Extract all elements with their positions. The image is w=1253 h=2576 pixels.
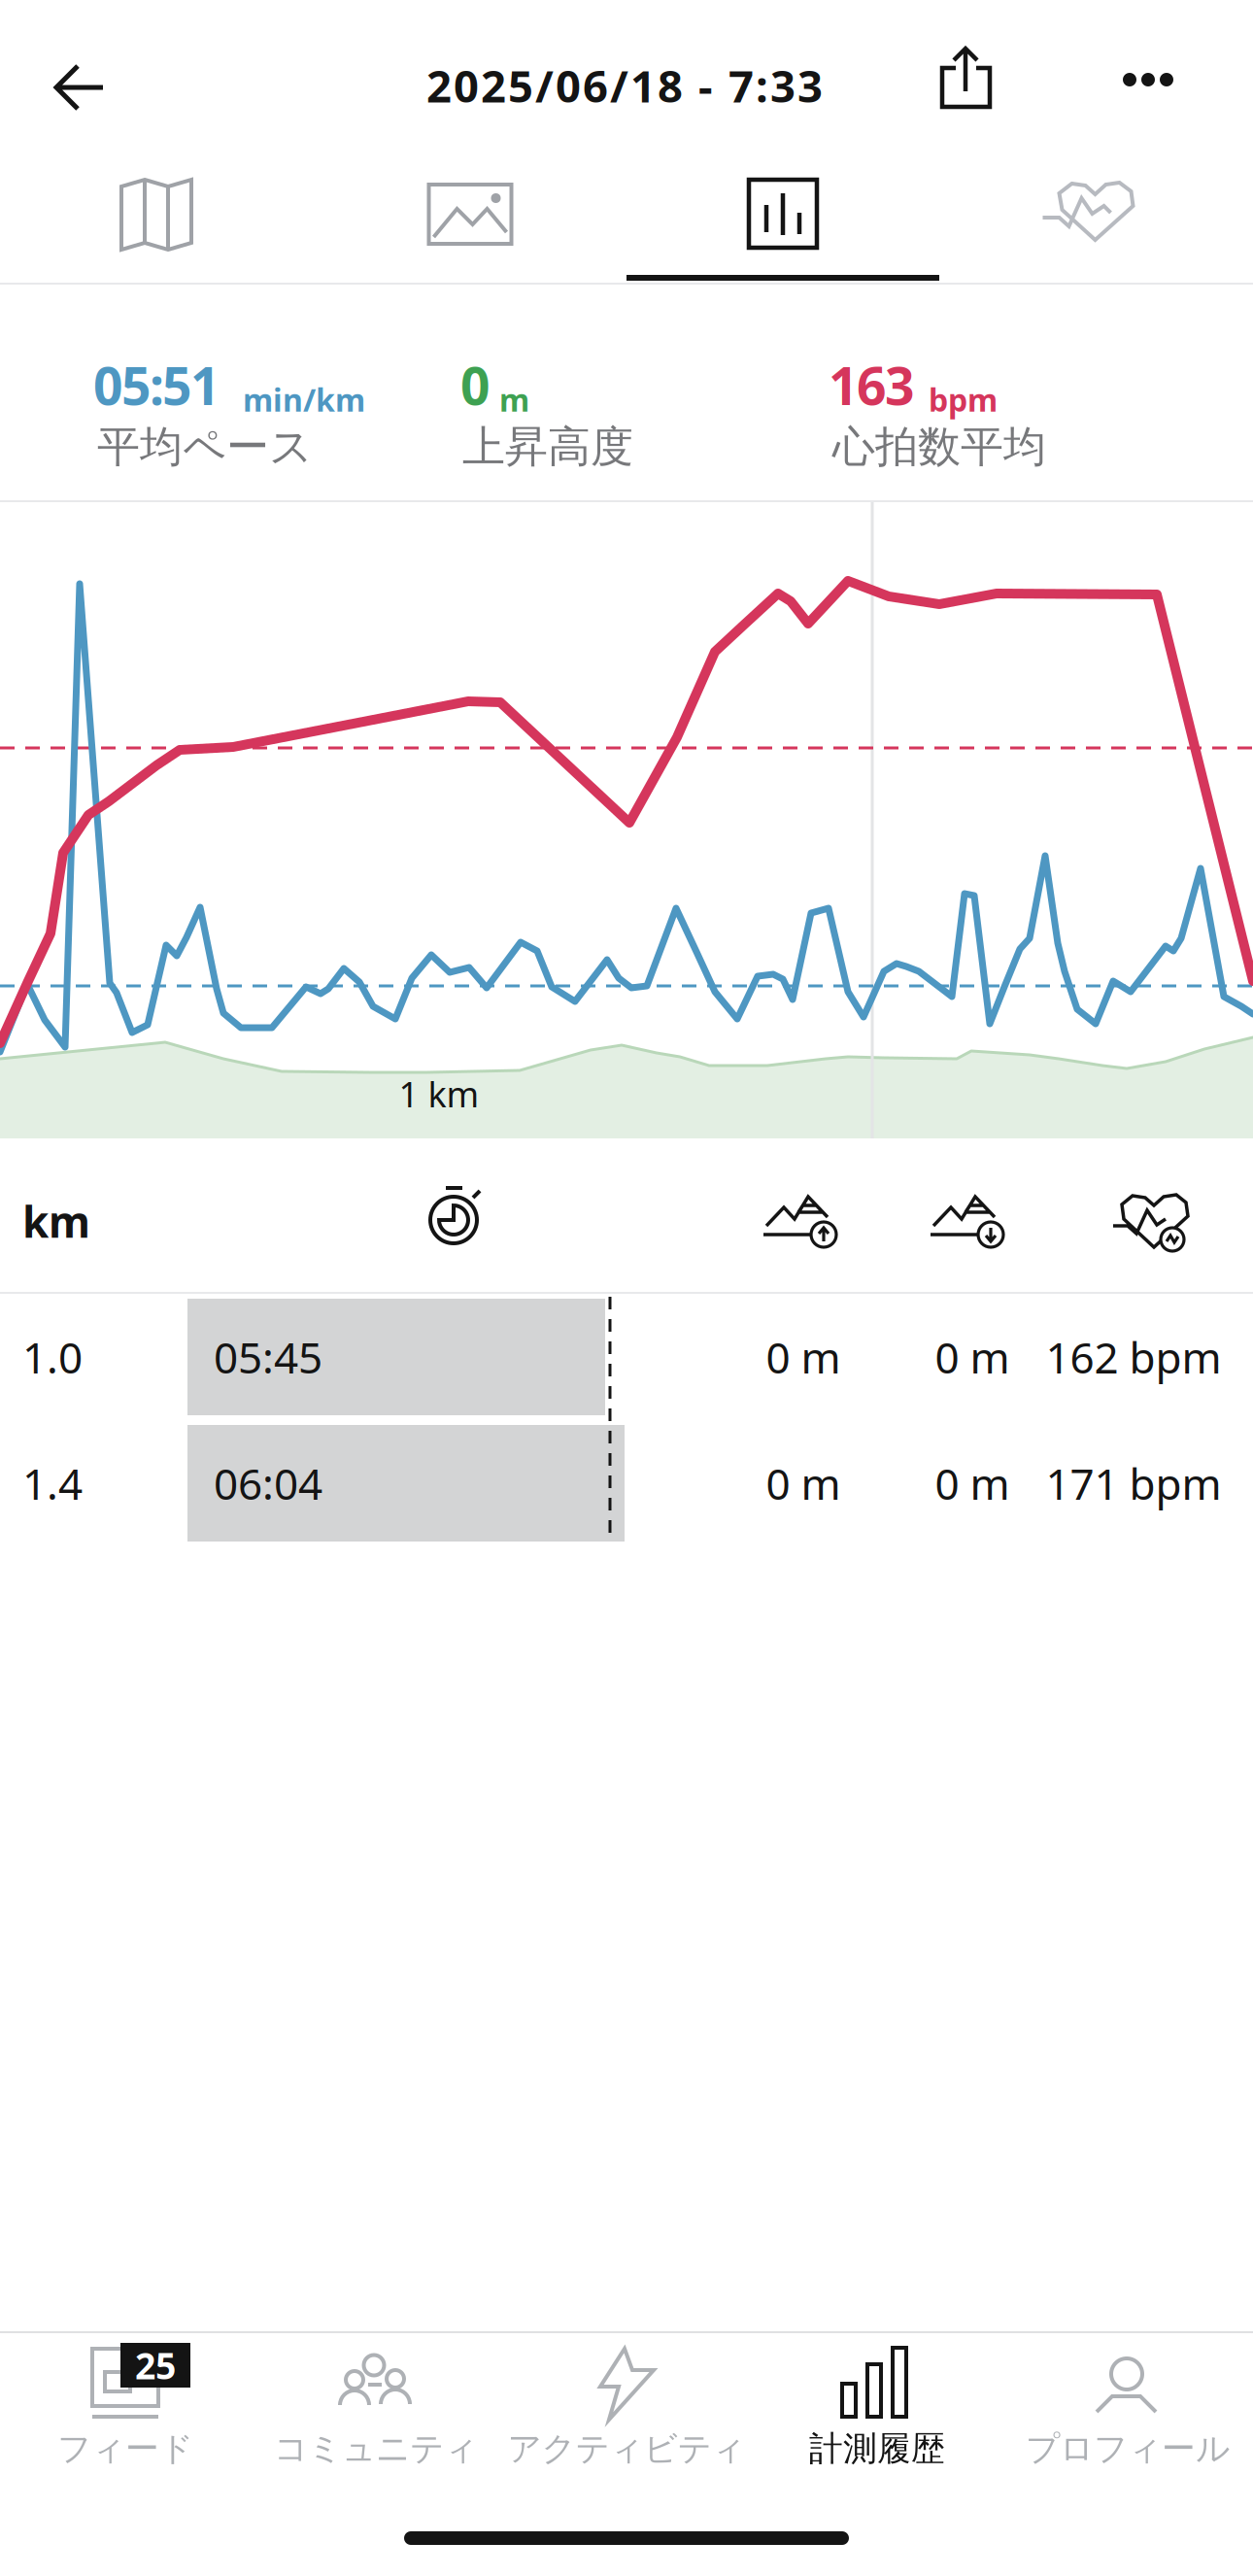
staticText: 25 <box>135 2341 176 2389</box>
staticText: 0 m <box>766 1455 841 1512</box>
button[interactable]: Photos <box>313 131 626 277</box>
staticText: km <box>22 1193 90 1250</box>
button[interactable]: Share <box>933 39 999 117</box>
staticText: 171 bpm <box>1046 1455 1221 1512</box>
staticText: 1.0 <box>22 1329 83 1385</box>
staticText: 0 <box>460 351 491 419</box>
staticText: bpm <box>929 379 998 420</box>
staticText: 0 m <box>766 1329 841 1385</box>
button[interactable]: アクティビティ <box>501 2333 752 2498</box>
staticText: フィード <box>57 2428 193 2469</box>
staticText: 1.4 <box>22 1455 83 1512</box>
staticText: 05:45 <box>214 1329 322 1385</box>
button[interactable]: Heart rate <box>940 131 1253 277</box>
staticText: プロフィール <box>1026 2428 1230 2469</box>
button[interactable]: Back <box>37 44 124 131</box>
staticText: 162 bpm <box>1046 1329 1221 1385</box>
staticText: 163 <box>829 351 915 419</box>
button[interactable]: 25 <box>0 2333 251 2498</box>
staticText: 05:51 <box>93 351 220 419</box>
staticText: 2025/06/18 - 7:33 <box>426 56 823 115</box>
staticText: 1 km <box>399 1071 479 1117</box>
staticText: min/km <box>243 379 365 420</box>
button[interactable]: Map <box>0 131 313 277</box>
staticText: 心拍数平均 <box>832 421 1046 473</box>
staticText: 06:04 <box>214 1455 322 1512</box>
staticText: m <box>499 379 529 420</box>
staticText: 0 m <box>935 1329 1010 1385</box>
staticText: アクティビティ <box>508 2428 745 2469</box>
button[interactable]: More options <box>1118 60 1178 99</box>
staticText: 平均ペース <box>97 421 313 473</box>
button[interactable]: Statistics <box>626 131 939 277</box>
button[interactable]: コミュニティ <box>251 2333 501 2498</box>
staticText: コミュニティ <box>274 2428 478 2469</box>
button[interactable]: 計測履歴 <box>752 2333 1002 2498</box>
staticText: 0 m <box>935 1455 1010 1512</box>
staticText: 計測履歴 <box>809 2428 945 2469</box>
staticText: 上昇高度 <box>462 421 633 473</box>
button[interactable]: プロフィール <box>1002 2333 1253 2498</box>
